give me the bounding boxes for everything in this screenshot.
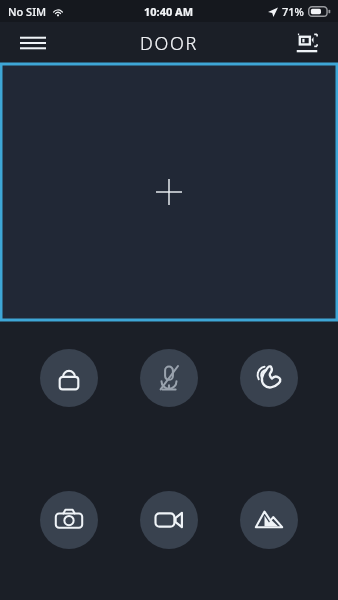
button[interactable]: Add camera (1, 64, 337, 320)
button[interactable]: Gallery (240, 491, 298, 549)
button[interactable]: Mute microphone (140, 349, 198, 407)
button[interactable]: Call (240, 349, 298, 407)
button[interactable]: Record video (140, 491, 198, 549)
button[interactable]: Recordings (287, 23, 327, 63)
other: Add camera (156, 179, 182, 205)
staticText: No SIM (8, 4, 47, 19)
button[interactable]: Menu (13, 23, 53, 63)
button[interactable]: Lock (40, 349, 98, 407)
button[interactable]: Take photo (40, 491, 98, 549)
staticText: DOOR (140, 31, 198, 56)
staticText: 71% (282, 4, 304, 19)
staticText: 10:40 AM (144, 4, 194, 19)
